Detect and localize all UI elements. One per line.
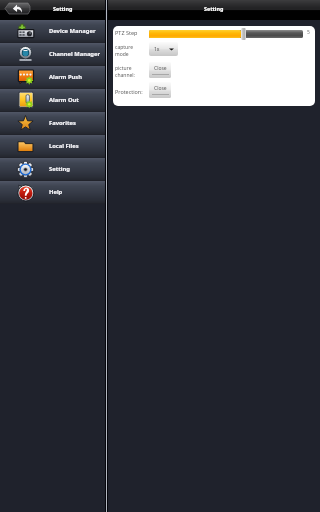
button[interactable]: Close [149, 62, 171, 78]
button[interactable]: Device Manager [0, 20, 105, 43]
staticText: 5 [307, 29, 310, 36]
button[interactable]: Setting [0, 158, 105, 181]
button[interactable]: Local Files [0, 135, 105, 158]
staticText: Setting [204, 5, 224, 12]
staticText: Favorites [49, 119, 76, 127]
button[interactable] [149, 30, 303, 38]
staticText: Help [49, 188, 63, 196]
staticText: Close [154, 85, 167, 92]
staticText: PTZ Step [115, 29, 138, 36]
staticText: 1x [154, 46, 160, 53]
staticText: Close [154, 65, 167, 72]
staticText: Alarm Out [49, 96, 79, 104]
button[interactable]: Close [149, 82, 171, 98]
staticText: Setting [53, 5, 73, 12]
staticText: Protection: [115, 88, 143, 95]
button[interactable]: Favorites [0, 112, 105, 135]
button[interactable]: Help [0, 181, 105, 204]
staticText: Device Manager [49, 27, 96, 35]
staticText: Setting [49, 165, 70, 173]
button[interactable]: Back [5, 3, 30, 14]
staticText: Local Files [49, 142, 79, 150]
staticText: Channel Manager [49, 50, 101, 58]
button[interactable]: Alarm Out [0, 89, 105, 112]
staticText: picture channel: [115, 65, 135, 78]
button[interactable]: Channel Manager [0, 43, 105, 66]
button[interactable]: Alarm Push [0, 66, 105, 89]
button[interactable]: 1x [149, 42, 178, 56]
staticText: capture mode [115, 44, 133, 57]
staticText: Alarm Push [49, 73, 83, 81]
